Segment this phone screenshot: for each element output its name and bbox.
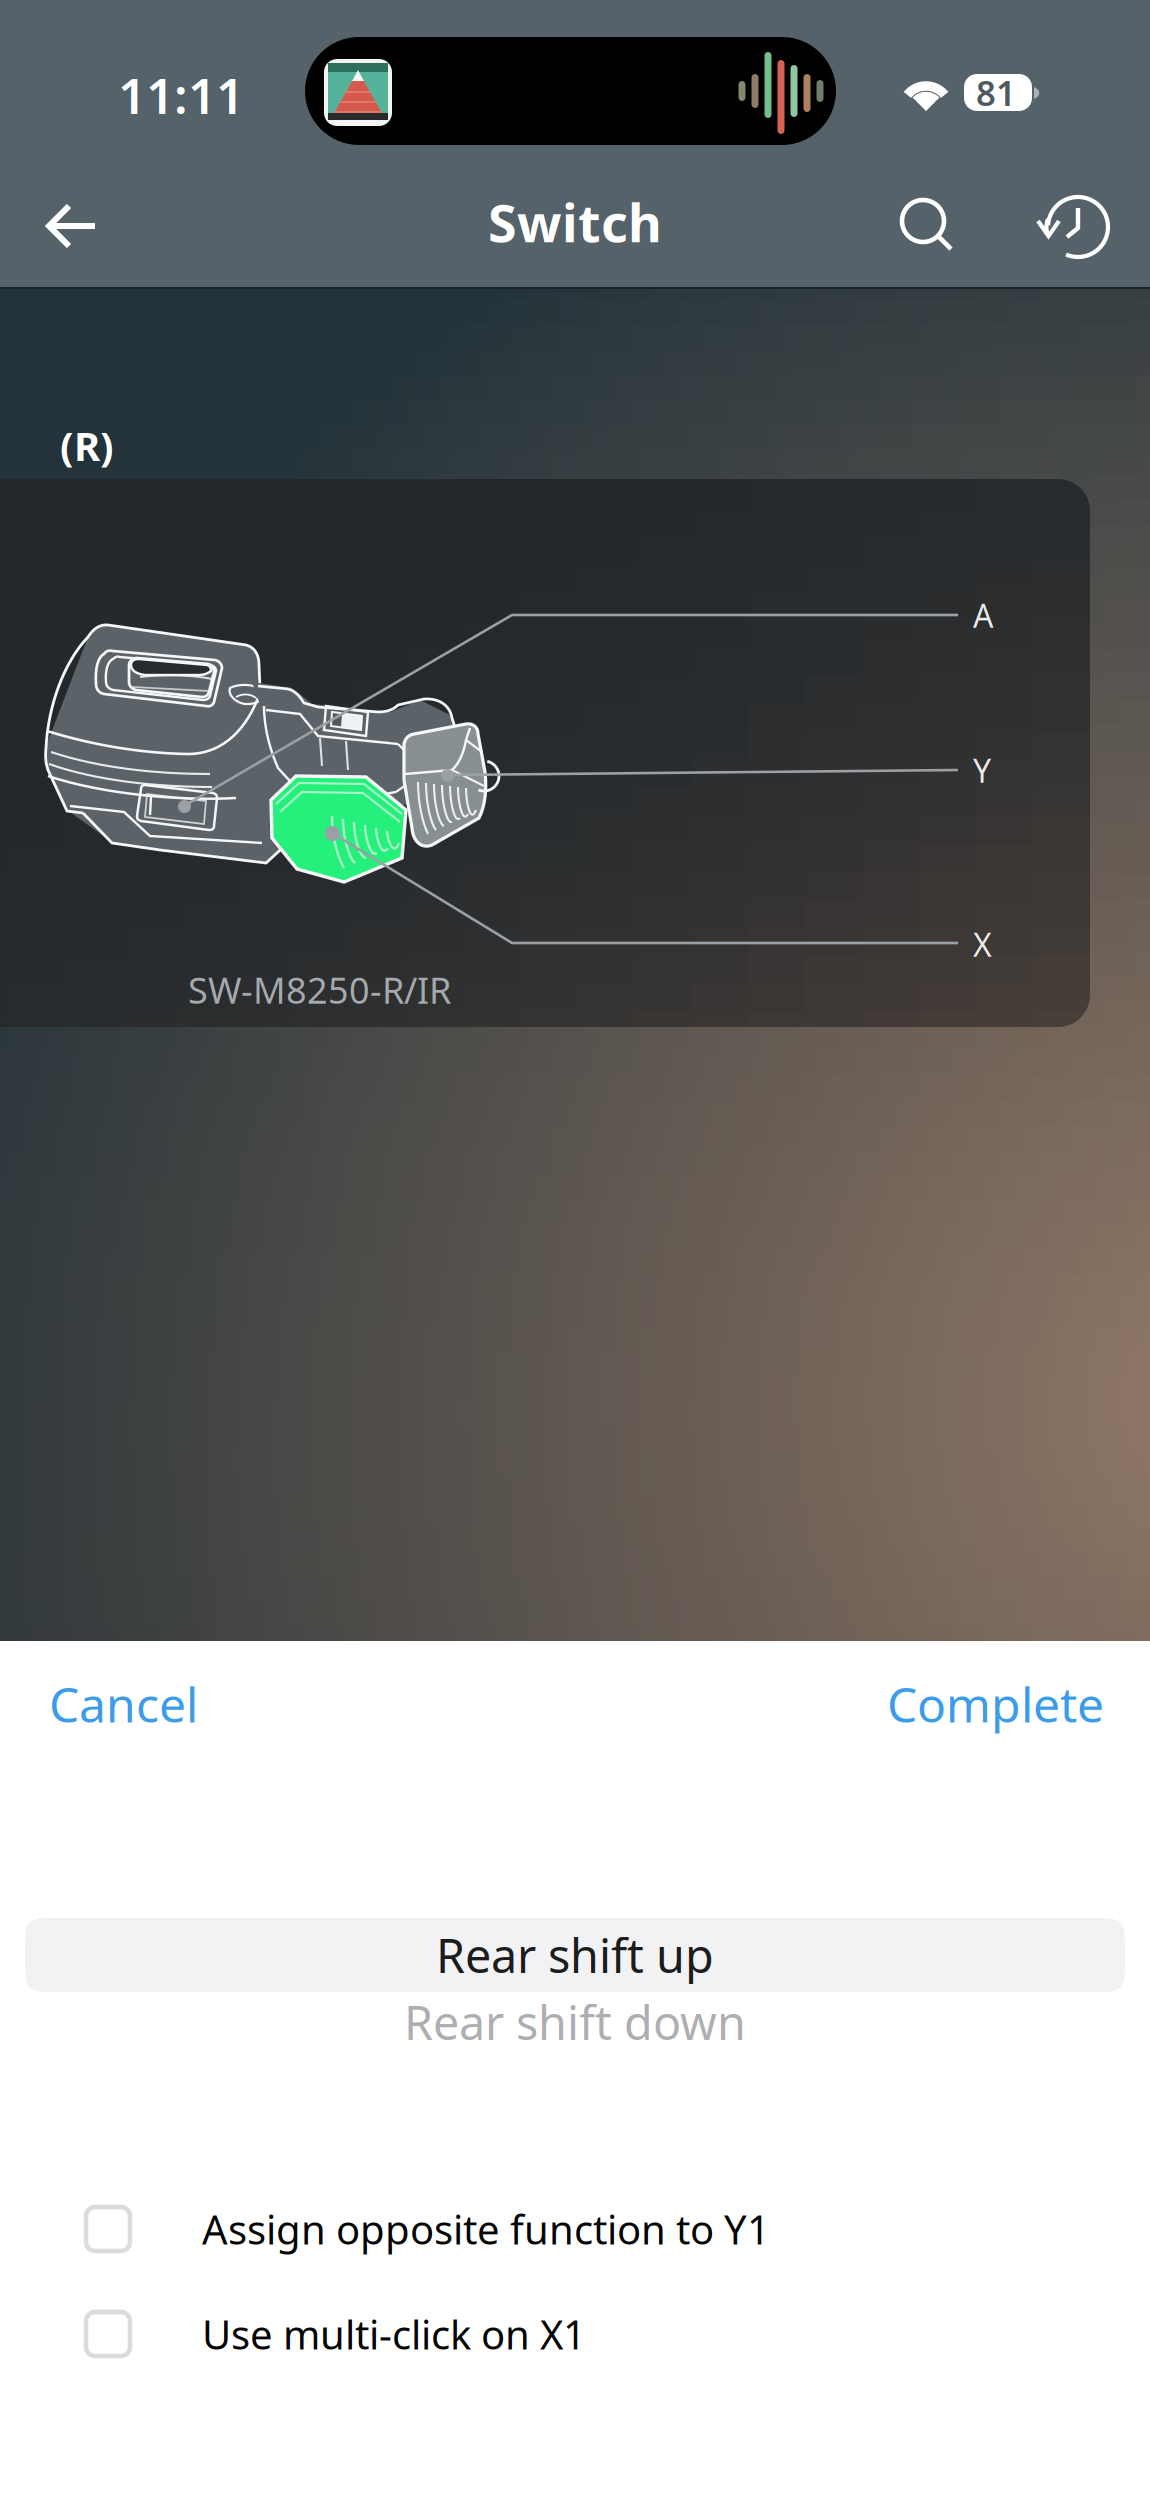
- staticText: Use multi-click on X1: [202, 2307, 586, 2360]
- staticText: A: [973, 594, 993, 636]
- button[interactable]: Back: [18, 169, 128, 285]
- button[interactable]: History: [1025, 170, 1129, 286]
- button[interactable]: Complete: [850, 1658, 1150, 1750]
- staticText: Cancel: [49, 1672, 198, 1736]
- staticText: X: [973, 923, 992, 965]
- staticText: Assign opposite function to Y1: [202, 2202, 770, 2255]
- staticText: Rear shift down: [404, 1991, 746, 2053]
- button[interactable]: Use multi-click on X1: [0, 2312, 1150, 2356]
- button[interactable]: Cancel: [0, 1658, 250, 1750]
- staticText: Switch: [488, 187, 662, 257]
- staticText: (R): [60, 419, 114, 472]
- staticText: Rear shift up: [436, 1924, 714, 1986]
- staticText: Y: [973, 749, 991, 791]
- staticText: 11:11: [118, 62, 244, 127]
- button[interactable]: Search: [876, 168, 980, 284]
- staticText: SW-M8250-R/IR: [188, 966, 451, 1014]
- staticText: 81: [976, 69, 1016, 115]
- staticText: Complete: [887, 1672, 1104, 1736]
- button[interactable]: Assign opposite function to Y1: [0, 2207, 1150, 2251]
